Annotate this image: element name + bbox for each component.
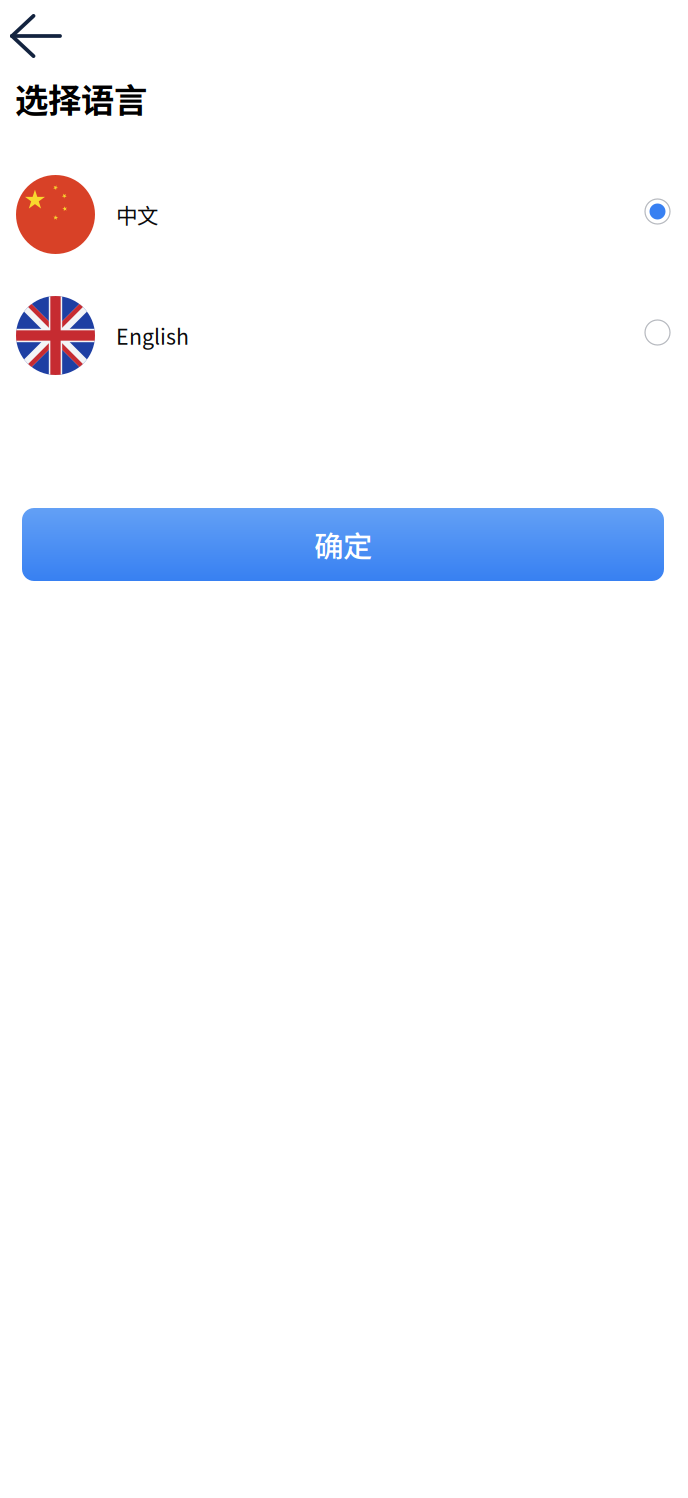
staticText: 选择语言 <box>15 74 147 122</box>
button[interactable]: 确定 <box>22 508 664 581</box>
staticText: 中文 <box>116 199 158 230</box>
staticText: English <box>116 320 189 351</box>
button[interactable]: 中文 <box>0 175 688 254</box>
button[interactable]: Back <box>0 0 72 66</box>
staticText: 确定 <box>314 523 372 566</box>
button[interactable]: English <box>0 296 688 375</box>
